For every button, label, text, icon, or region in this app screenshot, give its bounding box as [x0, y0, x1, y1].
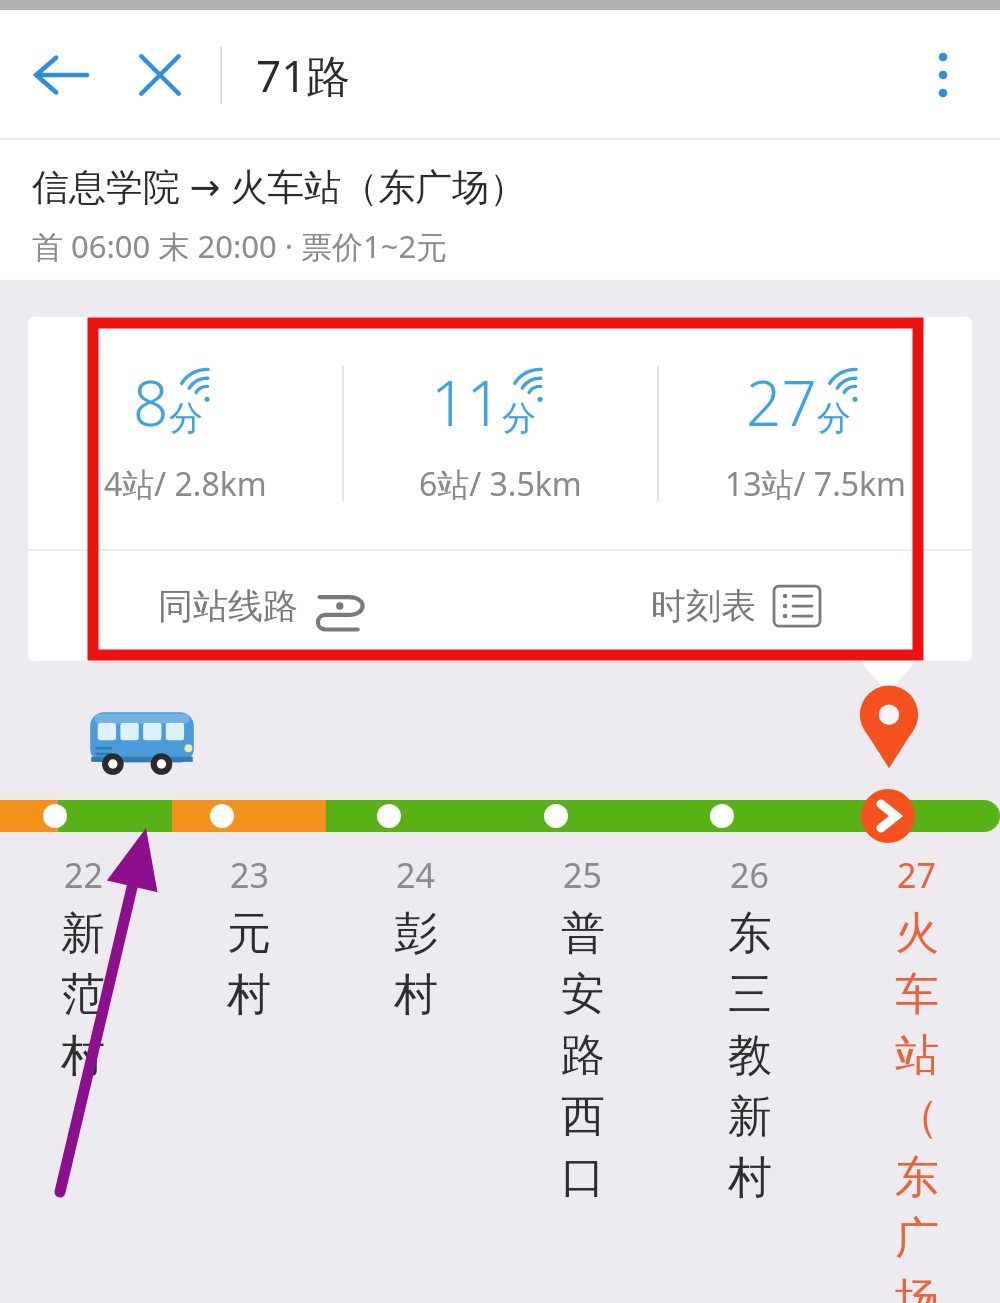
staticText: 新	[61, 906, 105, 961]
staticText: 村	[394, 967, 438, 1022]
staticText: 22	[64, 852, 103, 898]
staticText: 范	[61, 967, 105, 1022]
button[interactable]: 22	[0, 838, 166, 1089]
staticText: （	[895, 1089, 939, 1144]
staticText: 村	[728, 1150, 772, 1205]
staticText: 新	[728, 1089, 772, 1144]
staticText: 11	[431, 360, 502, 444]
staticText: 27	[897, 852, 936, 898]
staticText: 信息学院 → 火车站（东广场）	[32, 160, 527, 211]
staticText: 8	[133, 360, 169, 444]
staticText: 村	[227, 967, 271, 1022]
button[interactable]: 8	[28, 360, 342, 506]
staticText: 教	[728, 1028, 772, 1083]
staticText: 6站/ 3.5km	[419, 462, 582, 506]
staticText: 26	[730, 852, 769, 898]
staticText: 村	[61, 1028, 105, 1083]
staticText: 火	[895, 906, 939, 961]
button[interactable]: 23	[166, 838, 332, 1028]
staticText: 27	[746, 360, 817, 444]
staticText: 首 06:00 末 20:00 · 票价1~2元	[32, 225, 448, 267]
staticText: 彭	[394, 906, 438, 961]
staticText: 13站/ 7.5km	[725, 462, 907, 506]
staticText: 分	[502, 397, 536, 440]
staticText: 三	[728, 967, 772, 1022]
staticText: 普	[561, 906, 605, 961]
staticText: 时刻表	[651, 584, 756, 628]
staticText: 广	[895, 1211, 939, 1266]
button[interactable]: More options	[908, 40, 978, 110]
staticText: 23	[230, 852, 269, 898]
button[interactable]: 时刻表	[500, 551, 972, 661]
button[interactable]: Close	[132, 47, 188, 103]
staticText: 同站线路	[158, 584, 298, 628]
button[interactable]: 25	[499, 838, 666, 1211]
staticText: 24	[396, 852, 435, 898]
staticText: 元	[227, 906, 271, 961]
staticText: 站	[895, 1028, 939, 1083]
staticText: 分	[169, 397, 203, 440]
staticText: 东	[895, 1150, 939, 1205]
button[interactable]: 27	[659, 360, 972, 506]
staticText: 场	[895, 1272, 939, 1303]
button[interactable]: 24	[332, 838, 499, 1028]
button[interactable]: 26	[666, 838, 833, 1211]
button[interactable]: Back	[30, 44, 92, 106]
staticText: 西	[561, 1089, 605, 1144]
staticText: 71路	[256, 45, 351, 105]
button[interactable]: 27	[833, 838, 1000, 1303]
staticText: 安	[561, 967, 605, 1022]
staticText: 车	[895, 967, 939, 1022]
button[interactable]: 同站线路	[28, 551, 500, 661]
staticText: 分	[817, 397, 851, 440]
staticText: 路	[561, 1028, 605, 1083]
staticText: 口	[561, 1150, 605, 1205]
staticText: 25	[563, 852, 602, 898]
button[interactable]: 11	[344, 360, 657, 506]
staticText: 4站/ 2.8km	[104, 462, 267, 506]
staticText: 东	[728, 906, 772, 961]
